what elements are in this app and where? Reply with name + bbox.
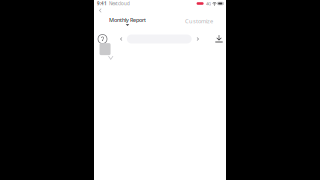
staticText: 9:41 xyxy=(97,0,107,7)
button[interactable]: Download xyxy=(214,34,224,43)
button[interactable]: Customize xyxy=(185,17,213,25)
staticText: Nextcloud xyxy=(107,0,130,7)
button[interactable]: Monthly Report xyxy=(109,16,146,26)
staticText: Customize xyxy=(185,17,213,25)
staticText: Monthly Report xyxy=(109,16,146,23)
staticText: 4G xyxy=(206,1,211,6)
button[interactable]: Previous period xyxy=(120,37,122,41)
button[interactable]: Help xyxy=(98,34,107,43)
button[interactable]: Next period xyxy=(197,37,199,41)
button[interactable]: Back xyxy=(94,7,107,14)
